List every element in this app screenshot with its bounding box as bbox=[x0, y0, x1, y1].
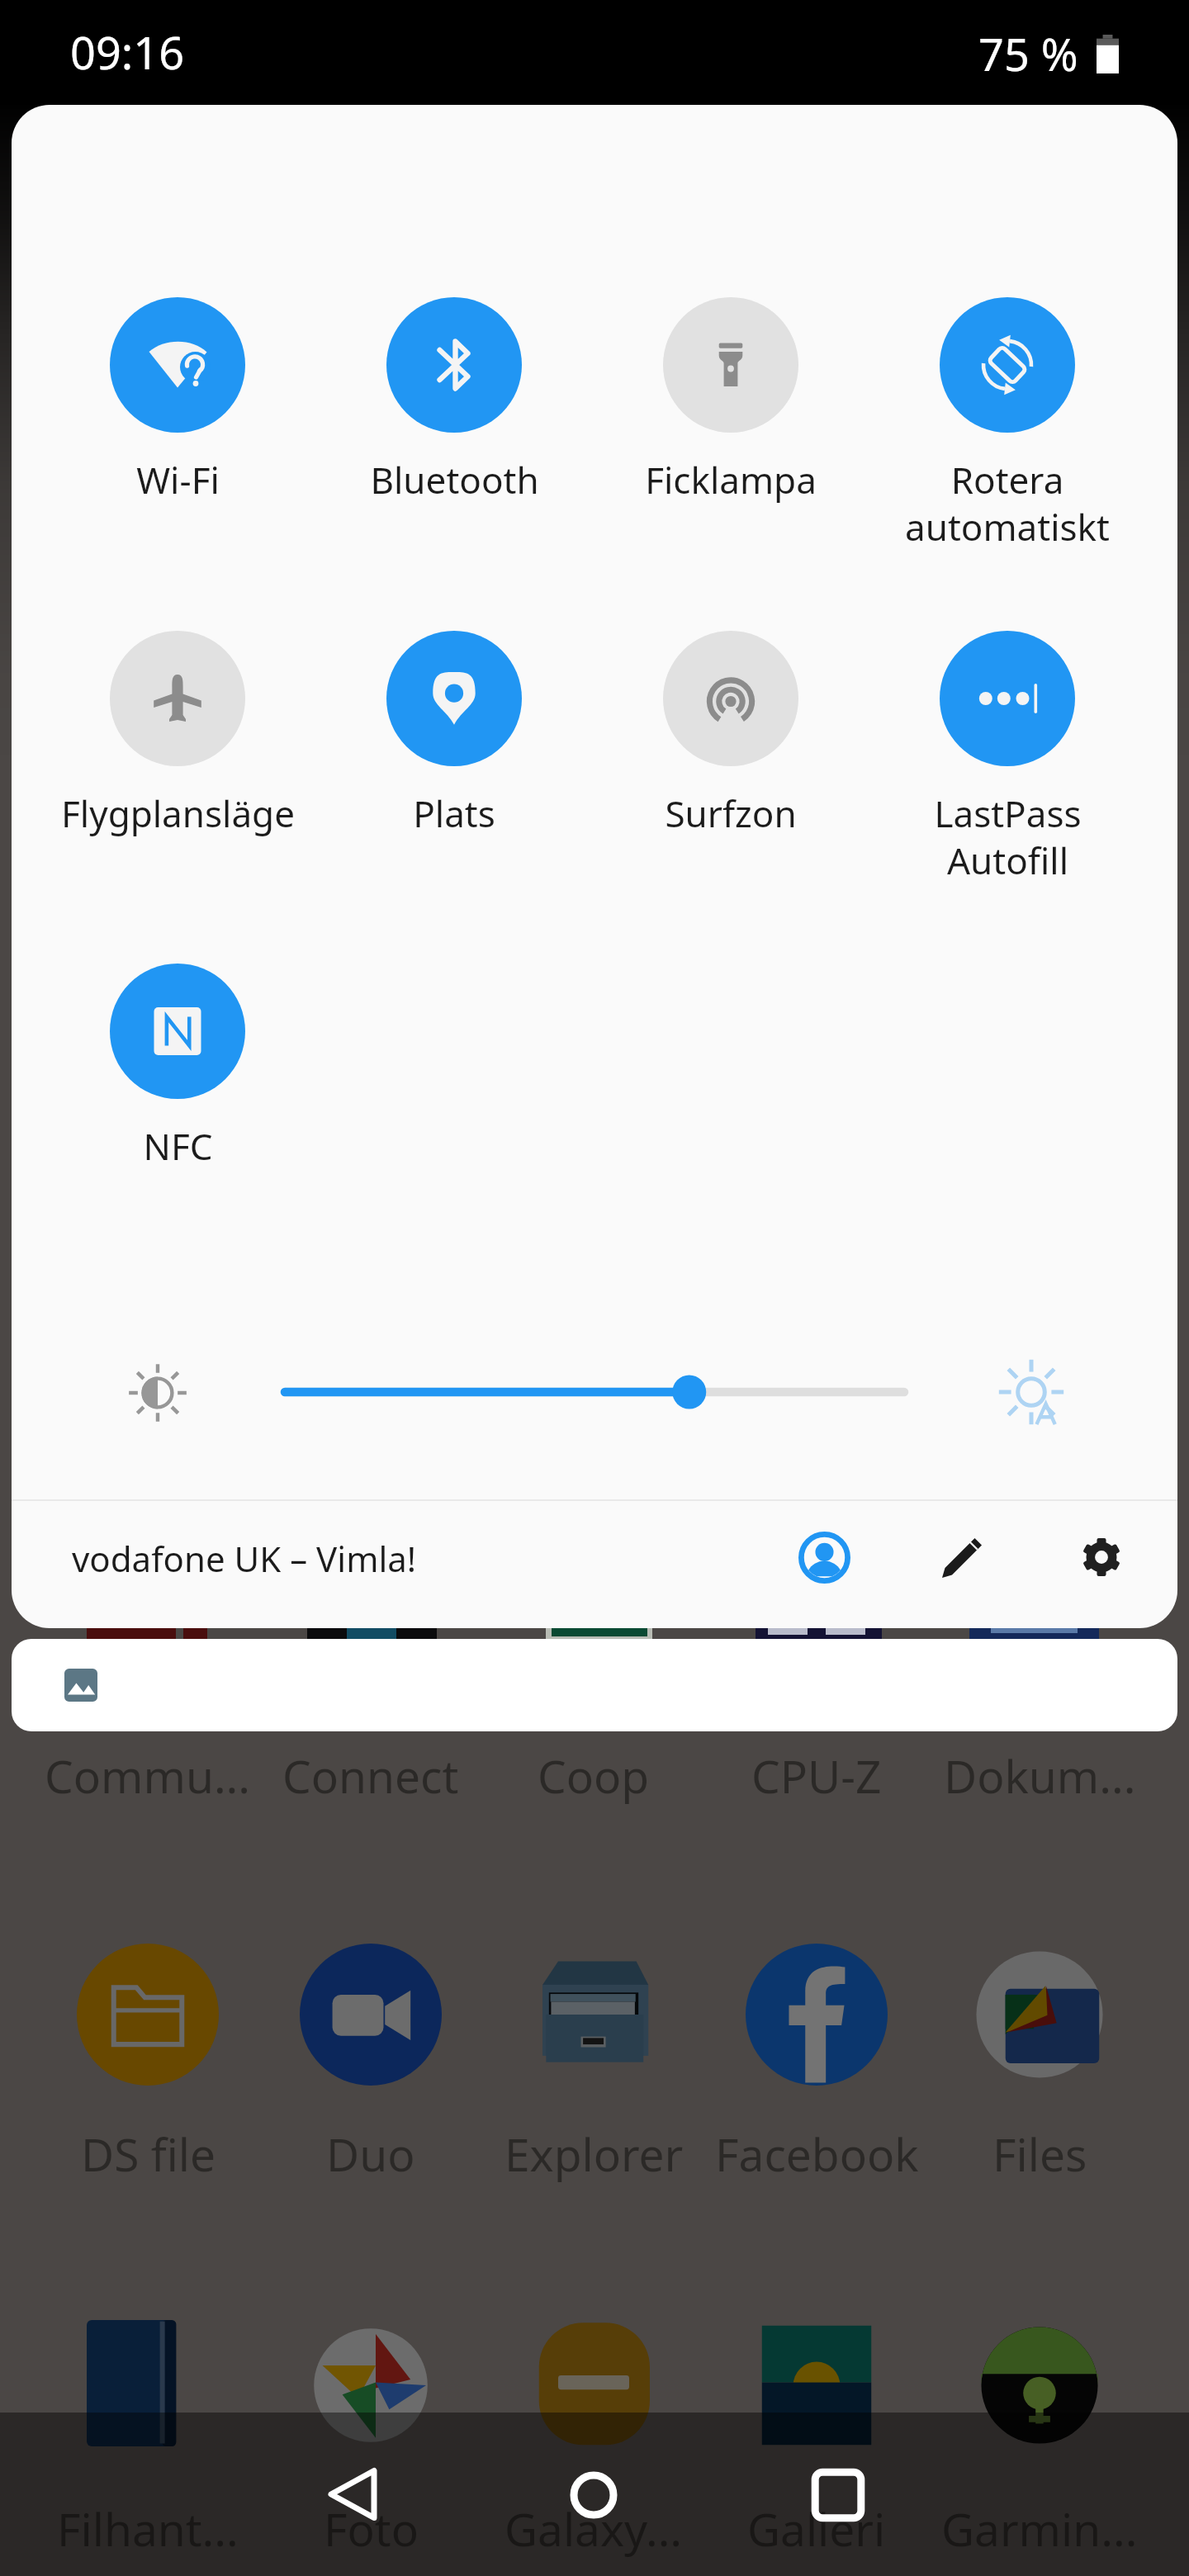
button[interactable]: Back bbox=[303, 2446, 402, 2545]
staticText: Surfzon bbox=[665, 788, 797, 838]
staticText: Ficklampa bbox=[645, 455, 817, 504]
staticText: Connect bbox=[282, 1745, 459, 1807]
staticText: 75 % bbox=[978, 23, 1078, 84]
button[interactable]: Home bbox=[544, 2446, 643, 2545]
staticText: Wi-Fi bbox=[136, 455, 220, 504]
button[interactable]: Flygplansläge bbox=[110, 631, 245, 766]
staticText: 09:16 bbox=[70, 21, 185, 83]
button[interactable]: Recent apps bbox=[789, 2446, 888, 2545]
staticText: Galleri bbox=[747, 2498, 886, 2559]
staticText: Flygplansläge bbox=[61, 788, 295, 838]
staticText: LastPass Autofill bbox=[934, 788, 1082, 885]
button[interactable]: NFC bbox=[110, 964, 245, 1099]
button[interactable]: Settings bbox=[1054, 1509, 1149, 1605]
button[interactable]: Bluetooth bbox=[386, 297, 522, 433]
button[interactable]: Ficklampa bbox=[663, 297, 798, 433]
staticText: CPU-Z bbox=[751, 1745, 882, 1807]
staticText: Filhant... bbox=[57, 2498, 239, 2559]
button[interactable]: Plats bbox=[386, 631, 522, 766]
staticText: Plats bbox=[413, 788, 495, 838]
button[interactable]: Minimum brightness bbox=[112, 1347, 203, 1438]
staticText: DS file bbox=[81, 2123, 216, 2185]
button[interactable]: Rotera automatiskt bbox=[940, 297, 1075, 433]
staticText: Coop bbox=[538, 1745, 650, 1807]
button[interactable]: Auto brightness bbox=[980, 1341, 1082, 1443]
button[interactable]: Edit bbox=[914, 1510, 1010, 1606]
button[interactable]: User profile bbox=[776, 1509, 872, 1605]
button[interactable]: Notification bbox=[12, 1639, 1177, 1731]
button[interactable]: Wi-Fi bbox=[110, 297, 245, 433]
staticText: NFC bbox=[143, 1121, 213, 1171]
staticText: Bluetooth bbox=[370, 455, 539, 504]
staticText: Commu... bbox=[45, 1745, 251, 1807]
staticText: Duo bbox=[326, 2123, 415, 2185]
staticText: Galaxy... bbox=[504, 2498, 683, 2559]
button[interactable]: Surfzon bbox=[663, 631, 798, 766]
staticText: Rotera automatiskt bbox=[905, 455, 1110, 552]
button[interactable]: LastPass Autofill bbox=[940, 631, 1075, 766]
staticText: vodafone UK – Vimla! bbox=[72, 1535, 417, 1582]
staticText: Explorer bbox=[504, 2123, 684, 2185]
staticText: Dokum... bbox=[944, 1745, 1136, 1807]
staticText: Facebook bbox=[715, 2123, 919, 2185]
staticText: Garmin... bbox=[941, 2498, 1138, 2559]
staticText: Files bbox=[992, 2123, 1087, 2185]
staticText: Foto bbox=[324, 2498, 419, 2559]
